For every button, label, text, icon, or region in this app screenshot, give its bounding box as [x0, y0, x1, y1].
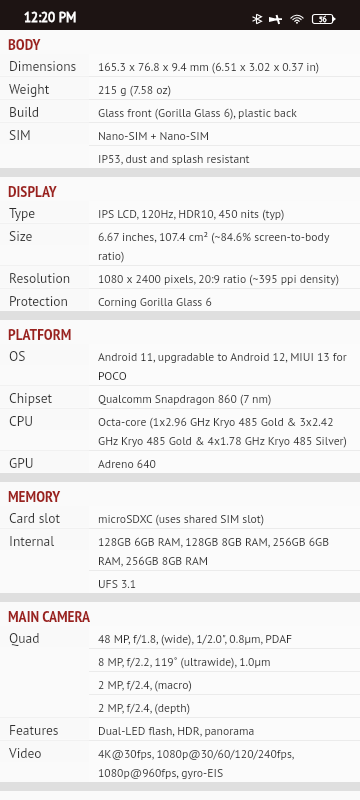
button[interactable]: MAIN CAMERA — [0, 602, 360, 626]
button[interactable]: Resolution — [0, 266, 360, 288]
staticText: Qualcomm Snapdragon 860 (7 nm) — [98, 388, 272, 407]
staticText: Dimensions — [9, 56, 77, 75]
staticText: 2 MP, f/2.4, (macro) — [98, 674, 192, 693]
button[interactable]: OS — [0, 344, 360, 385]
staticText: Octa-core (1x2.96 GHz Kryo 485 Gold & 3x… — [98, 411, 334, 430]
staticText: POCO — [98, 365, 127, 384]
button[interactable]: DISPLAY — [0, 177, 360, 201]
button[interactable]: CPU — [0, 409, 360, 450]
staticText: OS — [9, 346, 26, 365]
staticText: Build — [9, 102, 39, 121]
staticText: ratio) — [98, 245, 125, 264]
staticText: PLATFORM — [8, 324, 72, 344]
button[interactable]: Chipset — [0, 386, 360, 408]
staticText: 2 MP, f/2.4, (depth) — [98, 697, 190, 716]
button[interactable]: Internal — [0, 529, 360, 593]
staticText: GPU — [9, 453, 34, 472]
button[interactable]: Features — [0, 718, 360, 740]
staticText: CPU — [9, 411, 34, 430]
staticText: 48 MP, f/1.8, (wide), 1/2.0", 0.8µm, PDA… — [98, 628, 293, 647]
button[interactable]: Dimensions — [0, 54, 360, 76]
button[interactable]: Weight — [0, 77, 360, 99]
staticText: Android 11, upgradable to Android 12, MI… — [98, 346, 347, 365]
button[interactable]: SIM — [0, 123, 360, 168]
button[interactable]: Type — [0, 201, 360, 223]
button[interactable]: MEMORY — [0, 482, 360, 506]
staticText: GHz Kryo 485 Gold & 4x1.78 GHz Kryo 485 … — [98, 430, 347, 449]
staticText: Resolution — [9, 268, 71, 287]
staticText: Quad — [9, 628, 40, 647]
staticText: microSDXC (uses shared SIM slot) — [98, 508, 265, 527]
staticText: UFS 3.1 — [98, 573, 137, 592]
button[interactable]: Size — [0, 224, 360, 265]
button[interactable]: GPU — [0, 451, 360, 473]
staticText: Weight — [9, 79, 50, 98]
staticText: 56 — [319, 15, 327, 24]
staticText: 1080p@960fps, gyro-EIS — [98, 762, 224, 781]
button[interactable]: Quad — [0, 626, 360, 717]
staticText: Video — [9, 743, 42, 762]
button[interactable]: BODY — [0, 30, 360, 54]
staticText: Dual-LED flash, HDR, panorama — [98, 720, 255, 739]
staticText: 12:20 PM — [24, 9, 77, 26]
staticText: IPS LCD, 120Hz, HDR10, 450 nits (typ) — [98, 203, 285, 222]
staticText: SIM — [9, 125, 31, 144]
staticText: Chipset — [9, 388, 53, 407]
staticText: Features — [9, 720, 59, 739]
other: Wi-Fi — [289, 14, 305, 24]
staticText: Corning Gorilla Glass 6 — [98, 291, 212, 310]
staticText: 1080 x 2400 pixels, 20:9 ratio (~395 ppi… — [98, 268, 339, 287]
other: Battery 56 percent — [312, 14, 336, 24]
button[interactable]: Build — [0, 100, 360, 122]
staticText: 128GB 6GB RAM, 128GB 8GB RAM, 256GB 6GB — [98, 531, 330, 550]
staticText: Glass front (Gorilla Glass 6), plastic b… — [98, 102, 297, 121]
staticText: DISPLAY — [8, 181, 57, 201]
button[interactable]: PLATFORM — [0, 320, 360, 344]
staticText: Type — [9, 203, 36, 222]
staticText: 165.3 x 76.8 x 9.4 mm (6.51 x 3.02 x 0.3… — [98, 56, 320, 75]
staticText: MAIN CAMERA — [8, 606, 90, 626]
staticText: Card slot — [9, 508, 61, 527]
staticText: Size — [9, 226, 33, 245]
button[interactable]: Protection — [0, 289, 360, 311]
staticText: 8 MP, f/2.2, 119˚ (ultrawide), 1.0µm — [98, 651, 271, 670]
other: Bluetooth — [252, 14, 262, 24]
staticText: RAM, 256GB 8GB RAM — [98, 550, 208, 569]
staticText: Adreno 640 — [98, 453, 156, 472]
other: Ringer muted — [269, 15, 282, 24]
staticText: BODY — [8, 34, 41, 54]
staticText: 4K@30fps, 1080p@30/60/120/240fps, — [98, 743, 295, 762]
button[interactable]: Card slot — [0, 506, 360, 528]
staticText: Internal — [9, 531, 55, 550]
staticText: MEMORY — [8, 486, 61, 506]
staticText: 6.67 inches, 107.4 cm² (~84.6% screen-to… — [98, 226, 330, 245]
staticText: 215 g (7.58 oz) — [98, 79, 171, 98]
staticText: Nano-SIM + Nano-SIM — [98, 125, 209, 144]
staticText: IP53, dust and splash resistant — [98, 148, 250, 167]
staticText: Protection — [9, 291, 68, 310]
button[interactable]: Video — [0, 741, 360, 782]
